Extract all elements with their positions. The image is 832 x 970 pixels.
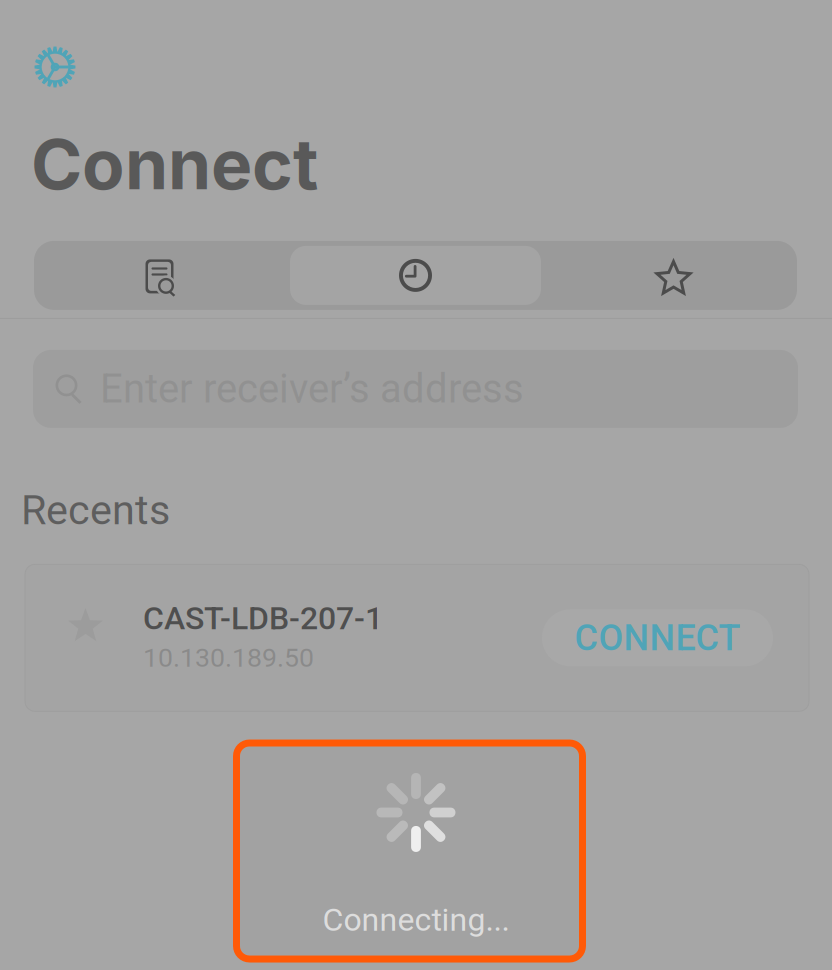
staticText: Connecting... [322,901,509,938]
button[interactable]: Settings [29,41,81,93]
staticText: 10.130.189.50 [143,642,314,673]
staticText: Recents [21,486,170,534]
button[interactable]: Favourites [541,246,792,305]
button[interactable]: Recents [290,246,541,305]
staticText: Connect [31,122,318,206]
staticText: CAST-LDB-207-1 [143,599,383,637]
button[interactable]: Scan [39,246,290,305]
staticText: Enter receiver’s address [100,365,524,412]
button[interactable]: CONNECT [542,609,773,666]
staticText: CONNECT [574,617,740,659]
